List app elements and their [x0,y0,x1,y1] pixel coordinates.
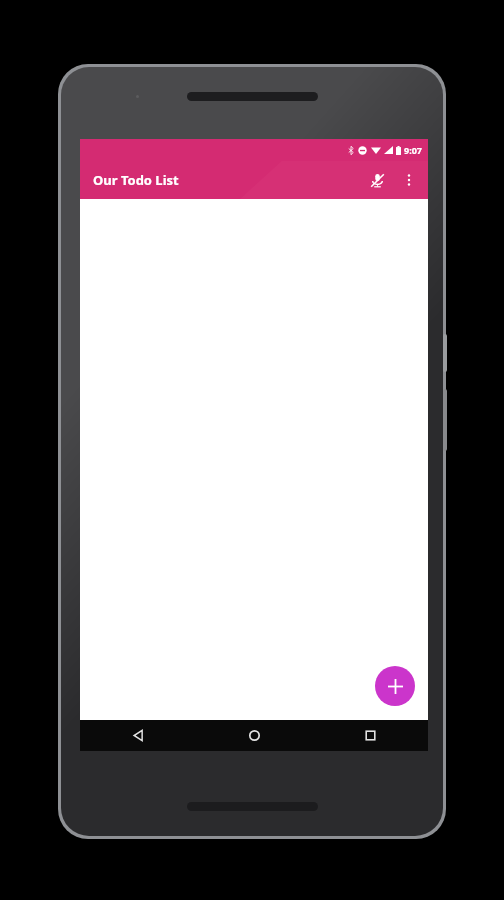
button[interactable]: Back [80,720,196,751]
button[interactable]: More options [394,165,424,195]
button[interactable]: Mute microphone [360,163,394,197]
button[interactable]: Home [196,720,312,751]
button[interactable]: Add todo [375,666,415,706]
staticText: Our Todo List [93,171,179,189]
staticText: 9:07 [404,144,422,156]
button[interactable]: Recent apps [312,720,428,751]
